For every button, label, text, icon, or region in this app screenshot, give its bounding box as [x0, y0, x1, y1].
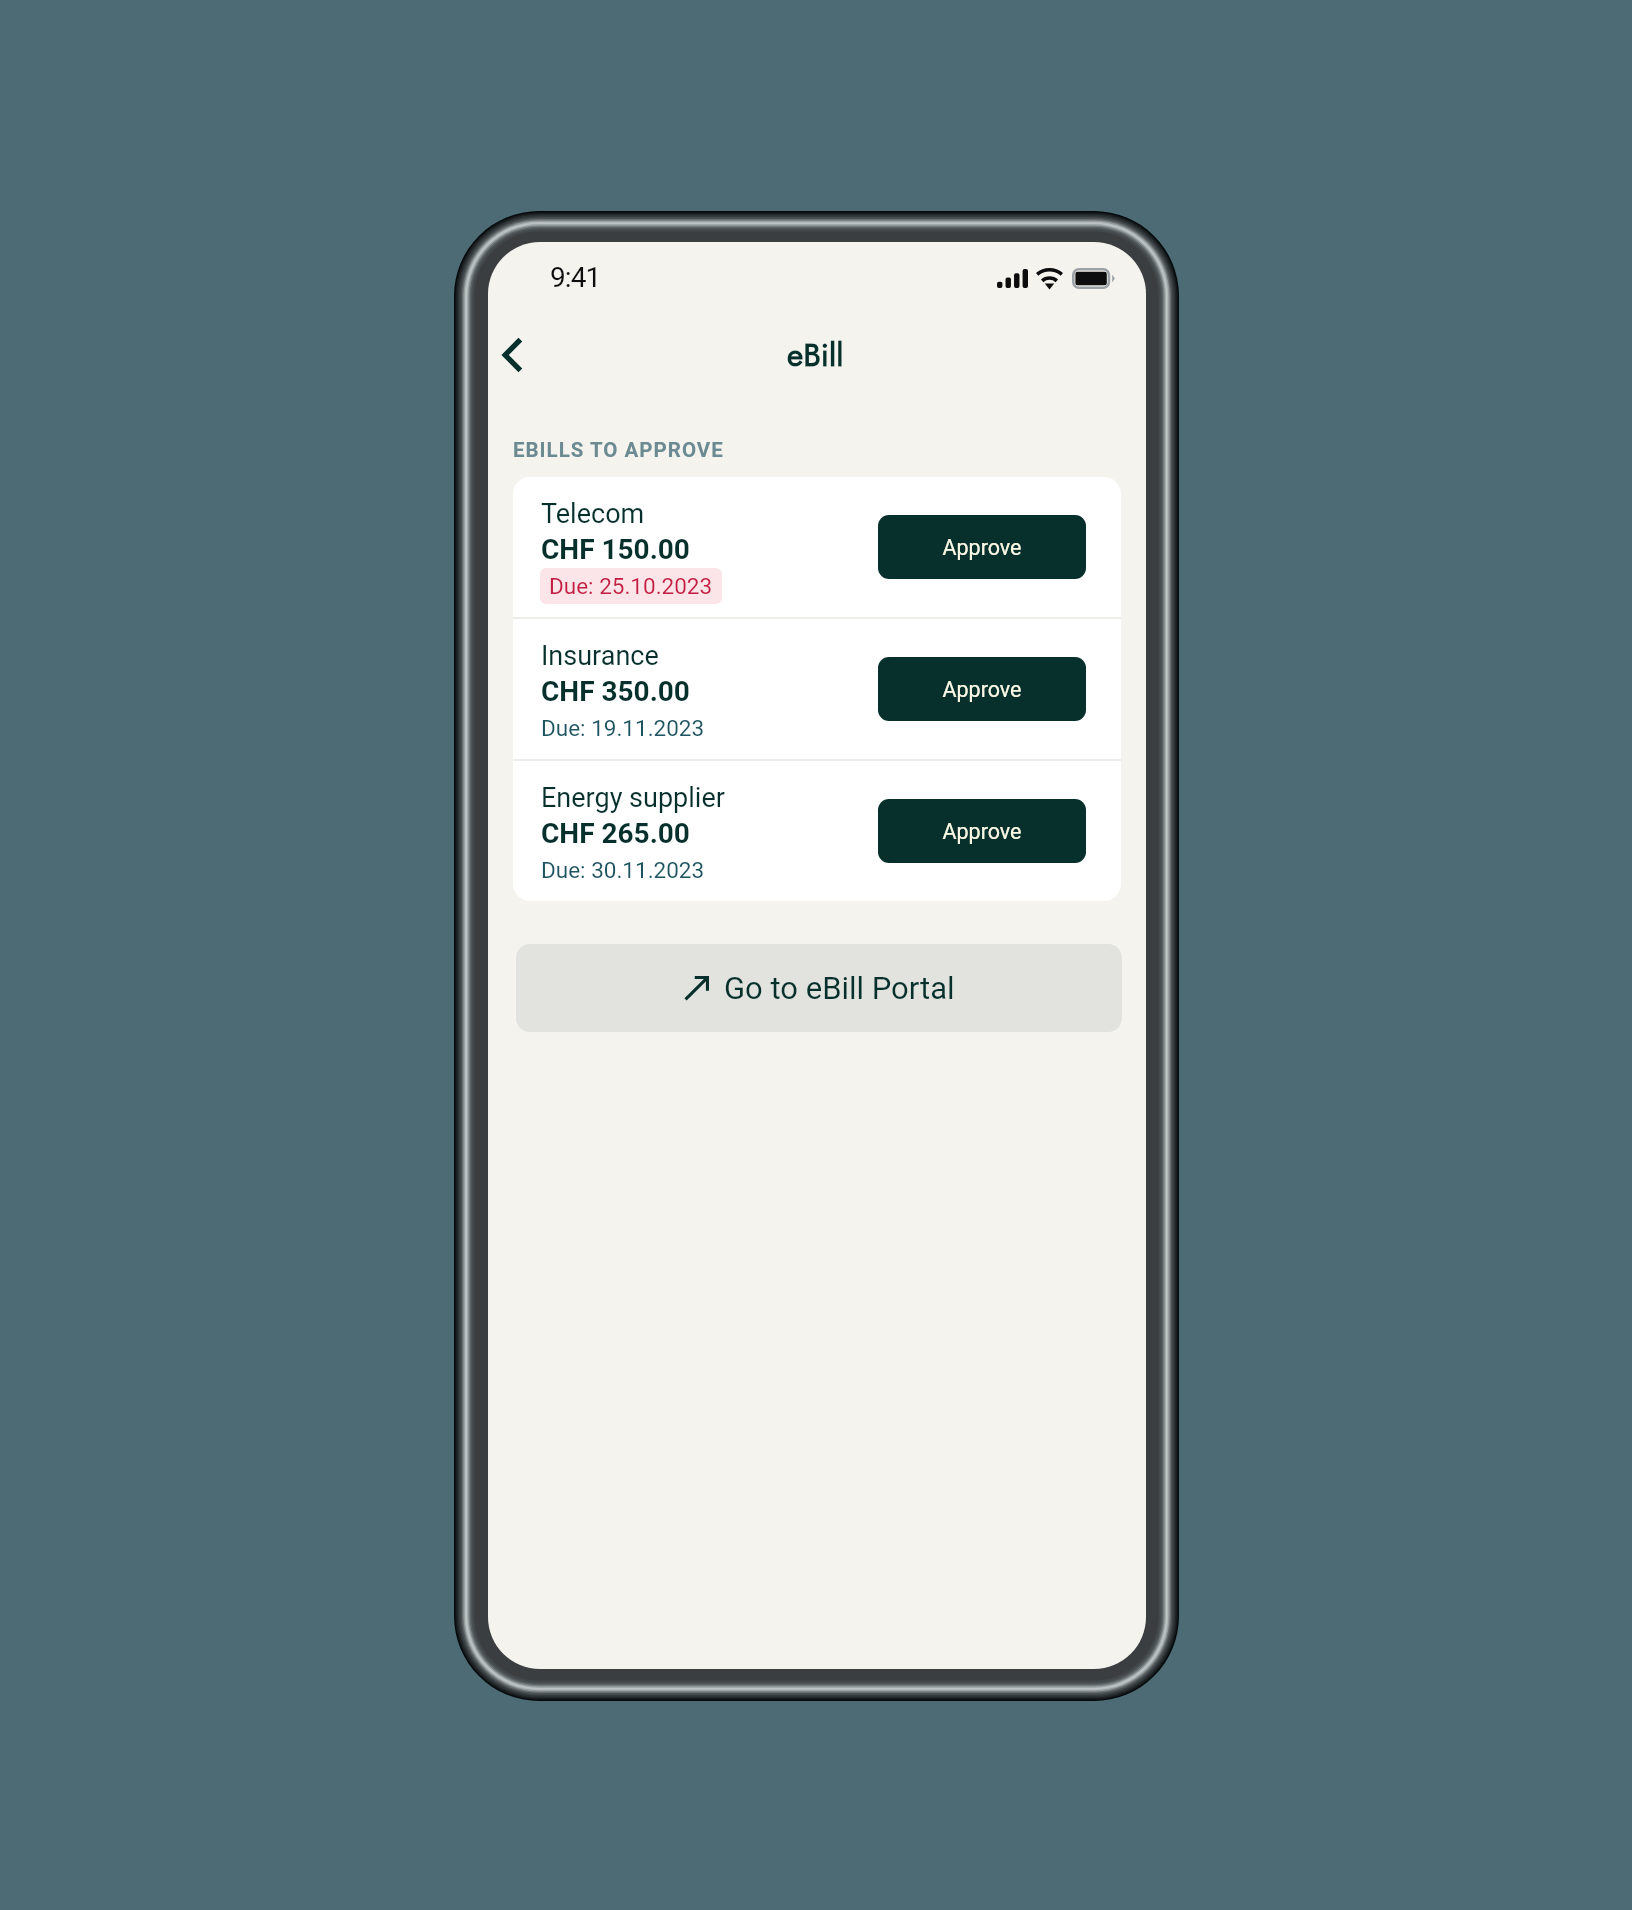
button[interactable]: Approve	[878, 515, 1086, 579]
staticText: EBILLS TO APPROVE	[513, 438, 724, 462]
staticText: CHF 150.00	[541, 533, 690, 566]
staticText: Due: 25.10.2023	[549, 573, 713, 599]
staticText: Insurance	[541, 640, 659, 672]
staticText: Approve	[942, 677, 1022, 702]
staticText: Go to eBill Portal	[724, 970, 955, 1006]
staticText: Approve	[942, 819, 1022, 844]
button[interactable]: Go to eBill Portal	[516, 944, 1122, 1032]
staticText: CHF 350.00	[541, 675, 690, 708]
button[interactable]: Energy supplier	[513, 761, 1121, 901]
button[interactable]: Back	[488, 327, 540, 383]
staticText: 9:41	[550, 261, 601, 294]
staticText: Due: 19.11.2023	[541, 715, 705, 741]
staticText: Approve	[942, 535, 1022, 560]
button[interactable]: Telecom	[513, 477, 1121, 617]
staticText: Telecom	[541, 498, 645, 530]
staticText: eBill	[787, 332, 844, 378]
button[interactable]: Insurance	[513, 619, 1121, 759]
button[interactable]: Approve	[878, 799, 1086, 863]
button[interactable]: Approve	[878, 657, 1086, 721]
staticText: Energy supplier	[541, 782, 725, 814]
staticText: Due: 30.11.2023	[541, 857, 705, 883]
staticText: CHF 265.00	[541, 817, 690, 850]
